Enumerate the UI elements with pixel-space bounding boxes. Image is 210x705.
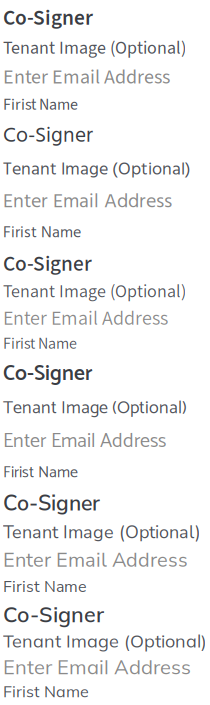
staticText: Tenant Image (Optional) [3, 35, 186, 61]
staticText: Tenant Image (Optional) [3, 629, 207, 652]
staticText: Firist Name [3, 460, 78, 486]
staticText: Enter Email Address [3, 654, 191, 679]
staticText: Enter Email Address [3, 63, 170, 91]
staticText: Firist Name [3, 220, 81, 246]
staticText: Co-Signer [3, 249, 92, 277]
staticText: Firist Name [3, 576, 87, 598]
staticText: Co-Signer [3, 3, 93, 33]
staticText: Enter Email Address [3, 547, 188, 574]
staticText: Tenant Image (Optional) [3, 155, 191, 184]
staticText: Enter Email Address [3, 186, 172, 218]
staticText: Enter Email Address [3, 425, 166, 458]
staticText: Firist Name [3, 93, 78, 116]
staticText: Firist Name [3, 681, 89, 701]
staticText: Co-Signer [3, 601, 104, 627]
staticText: Tenant Image (Optional) [3, 279, 186, 302]
staticText: Co-Signer [3, 489, 100, 518]
staticText: Co-Signer [3, 356, 93, 391]
staticText: Firist Name [3, 332, 77, 353]
staticText: Tenant Image (Optional) [3, 393, 187, 423]
staticText: Co-Signer [3, 119, 93, 153]
staticText: Enter Email Address [3, 304, 168, 330]
staticText: Tenant Image (Optional) [3, 520, 201, 545]
